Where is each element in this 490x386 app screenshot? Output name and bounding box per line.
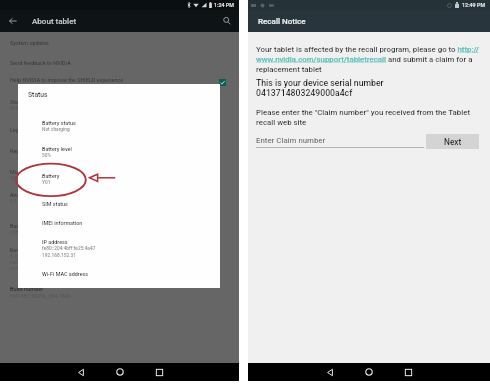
button[interactable]: Wi-Fi MAC address <box>18 270 220 278</box>
staticText: Your tablet is affected by the recall pr… <box>256 45 482 74</box>
staticText: Recall Notice <box>258 17 306 26</box>
button[interactable]: Android version <box>0 191 239 205</box>
button[interactable]: System updates <box>0 39 239 47</box>
button[interactable]: Recent apps <box>398 363 418 381</box>
staticText: fe80::204:4bff:fe25:4a47 192.168.152.31 <box>42 246 96 258</box>
button[interactable]: Recent apps <box>149 363 169 381</box>
button[interactable]: Home <box>359 363 379 381</box>
staticText: Status <box>10 99 26 105</box>
button[interactable]: Status <box>0 98 239 112</box>
staticText: Please enter the "Claim number" you rece… <box>256 108 482 127</box>
staticText: SHIELD Tablet K1 <box>10 176 48 182</box>
staticText: Not charging <box>42 127 70 133</box>
button[interactable]: Home <box>110 363 130 381</box>
button[interactable]: Next <box>426 134 479 149</box>
button[interactable]: Battery level <box>18 145 220 159</box>
staticText: Status <box>28 91 48 99</box>
button[interactable]: Battery status <box>18 119 220 133</box>
button[interactable]: Legal information <box>0 126 239 134</box>
button[interactable]: Model number <box>0 168 239 182</box>
staticText: LMY48C.SD99L_564.7866 <box>10 293 71 299</box>
staticText: v13.0 <box>10 230 22 236</box>
button[interactable]: Help NVIDIA to improve the SHIELD experi… <box>0 76 239 84</box>
staticText: Battery <box>42 173 60 179</box>
staticText: IP address <box>42 239 68 245</box>
staticText: Next <box>444 137 462 147</box>
button[interactable]: Send feedback to NVIDIA <box>0 59 239 67</box>
staticText: 3.10.96-gcb2a0ec buildbrain@mobile-u64-1… <box>10 254 73 272</box>
button[interactable]: SIM status <box>18 200 220 208</box>
button[interactable]: Back <box>71 363 91 381</box>
staticText: Kernel version <box>10 247 45 253</box>
staticText: This is your device serial number <box>256 78 384 88</box>
button[interactable]: Toggle help NVIDIA <box>219 79 226 86</box>
staticText: Battery level <box>42 146 72 152</box>
button[interactable]: Search <box>220 14 234 28</box>
staticText: 5.1.1 <box>10 199 21 205</box>
staticText: 0413714803249000a4cf <box>256 88 353 98</box>
staticText: IMEI information <box>42 220 83 226</box>
button[interactable]: Battery <box>18 172 220 186</box>
staticText: 12:49 PM <box>462 2 486 8</box>
button[interactable]: Regulatory information <box>0 147 239 155</box>
staticText: Status of the battery, network and other… <box>10 106 105 112</box>
staticText: Enter Claim number <box>256 136 326 145</box>
staticText: About tablet <box>32 17 77 26</box>
button[interactable]: IMEI information <box>18 219 220 227</box>
staticText: Battery status <box>42 120 76 126</box>
staticText: 50% <box>42 153 51 159</box>
staticText: Model number <box>10 169 45 175</box>
staticText: Regulatory information <box>10 148 66 154</box>
button[interactable]: Back <box>320 363 340 381</box>
staticText: Help NVIDIA to improve the SHIELD experi… <box>10 77 124 83</box>
button[interactable]: Enter Claim number <box>256 133 424 148</box>
staticText: Legal information <box>10 127 53 133</box>
button[interactable]: Kernel version <box>0 246 239 272</box>
staticText: Wi-Fi MAC address <box>42 271 89 277</box>
staticText: Baseband version <box>10 223 53 229</box>
staticText: 1:24 PM <box>214 2 234 8</box>
button[interactable]: Back <box>6 14 20 28</box>
staticText: Build number <box>10 286 44 293</box>
button[interactable]: IP address <box>18 238 220 258</box>
staticText: SIM status <box>42 201 68 207</box>
staticText: Send feedback to NVIDIA <box>10 60 71 66</box>
staticText: Android version <box>10 192 48 198</box>
staticText: System updates <box>10 40 49 46</box>
button[interactable]: Baseband version <box>0 222 239 236</box>
staticText: Y01 <box>42 180 51 186</box>
